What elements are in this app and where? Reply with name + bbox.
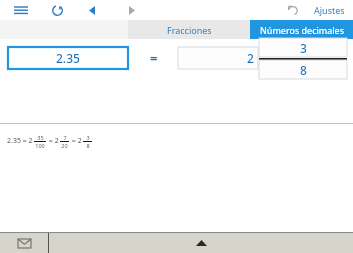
- button[interactable]: Expand: [49, 233, 353, 253]
- staticText: 8: [86, 142, 90, 149]
- button[interactable]: 8: [259, 60, 347, 79]
- button[interactable]: Refresh: [46, 0, 68, 20]
- button[interactable]: 2: [178, 47, 258, 69]
- button[interactable]: 3: [259, 38, 347, 57]
- button[interactable]: Menu: [8, 0, 34, 20]
- button[interactable]: Undo: [280, 0, 306, 20]
- button[interactable]: Previous: [82, 0, 102, 20]
- staticText: =: [150, 49, 158, 67]
- button[interactable]: Fracciones: [128, 20, 250, 39]
- staticText: = 2: [70, 136, 82, 146]
- staticText: 2: [247, 50, 254, 66]
- staticText: 3: [86, 134, 90, 141]
- staticText: Fracciones: [167, 24, 212, 36]
- staticText: Ajustes: [314, 4, 345, 16]
- staticText: 35: [37, 134, 44, 141]
- button[interactable]: Ajustes: [306, 0, 353, 20]
- staticText: 7: [63, 134, 67, 141]
- staticText: Números decimales: [260, 24, 344, 36]
- button[interactable]: Next: [122, 0, 142, 20]
- button[interactable]: Números decimales: [250, 20, 353, 39]
- staticText: 8: [300, 62, 307, 78]
- staticText: 3: [300, 40, 307, 56]
- staticText: 100: [35, 142, 45, 149]
- staticText: 2.35 = 2: [7, 136, 33, 146]
- staticText: 2.35: [56, 50, 80, 66]
- button[interactable]: Messages: [0, 233, 48, 253]
- staticText: = 2: [47, 136, 59, 146]
- staticText: 20: [61, 142, 68, 149]
- button[interactable]: 2.35: [8, 47, 128, 69]
